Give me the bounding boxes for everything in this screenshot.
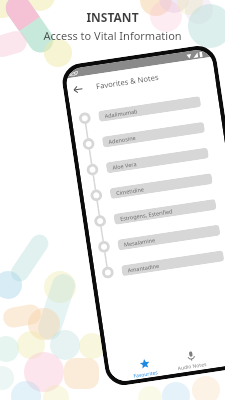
- staticText: Favourites: [133, 369, 159, 380]
- staticText: Estrogens, Esterified: [119, 207, 173, 222]
- button[interactable]: Audio Notes: [167, 346, 215, 374]
- staticText: Mesalamine: [123, 236, 156, 248]
- staticText: Favorites & Notes: [95, 72, 159, 91]
- staticText: Cimetidine: [116, 185, 144, 196]
- button[interactable]: Favourites: [123, 354, 167, 381]
- staticText: Adenosine: [108, 134, 137, 145]
- staticText: Amantadine: [127, 262, 160, 273]
- staticText: INSTANT: [86, 9, 139, 25]
- button[interactable]: Back: [71, 82, 84, 96]
- button[interactable]: Mesalamine: [97, 217, 222, 260]
- staticText: Adalimumab: [104, 107, 138, 119]
- button[interactable]: Amantadine: [101, 242, 225, 286]
- button[interactable]: Estrogens, Esterified: [93, 191, 218, 235]
- button[interactable]: Adenosine: [82, 114, 206, 157]
- staticText: Aloe Vera: [112, 160, 138, 171]
- button[interactable]: Cimetidine: [89, 165, 214, 209]
- staticText: Audio Notes: [177, 361, 207, 372]
- staticText: Access to Vital Information: [43, 28, 182, 43]
- button[interactable]: Aloe Vera: [86, 139, 210, 183]
- staticText: 6:37: [69, 70, 79, 77]
- button[interactable]: Adalimumab: [78, 88, 202, 132]
